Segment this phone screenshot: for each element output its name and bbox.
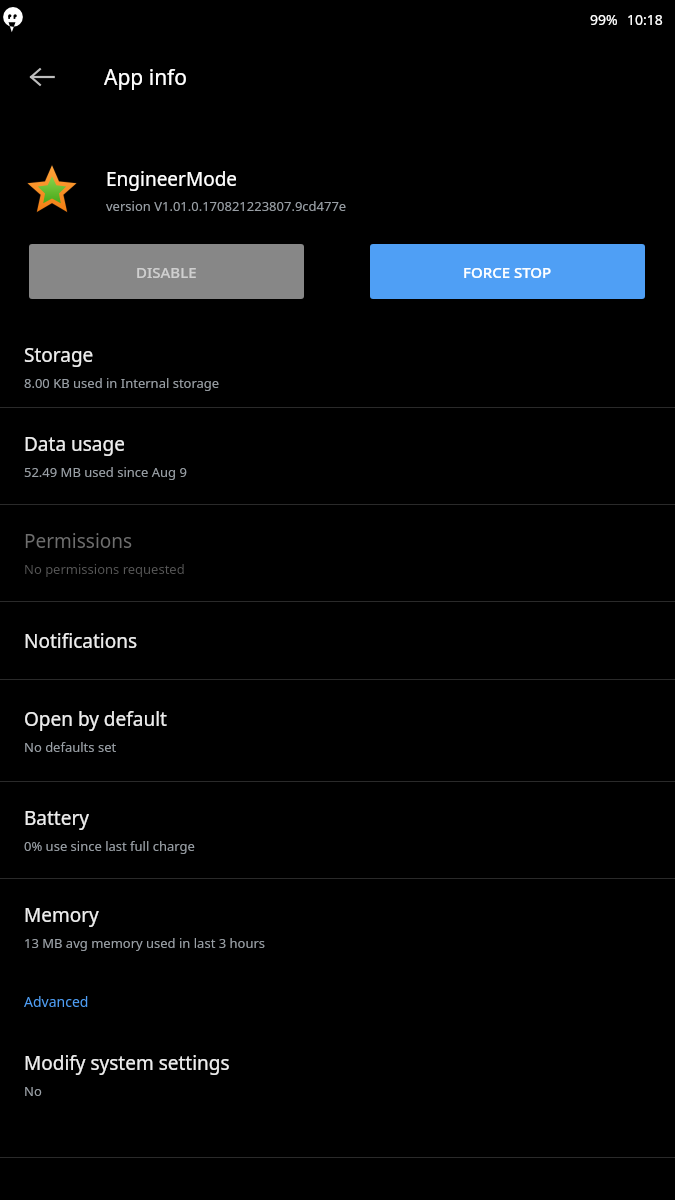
staticText: Advanced	[24, 992, 89, 1011]
button[interactable]: DISABLE	[29, 244, 304, 299]
button[interactable]: Permissions	[0, 505, 675, 601]
staticText: FORCE STOP	[463, 262, 552, 282]
staticText: Memory	[24, 902, 99, 928]
button[interactable]: FORCE STOP	[370, 244, 645, 299]
staticText: Open by default	[24, 706, 167, 732]
button[interactable]: Back	[14, 49, 70, 105]
staticText: App info	[104, 63, 188, 92]
staticText: Battery	[24, 805, 89, 831]
staticText: 99%	[590, 10, 618, 29]
staticText: Notifications	[24, 628, 138, 654]
staticText: EngineerMode	[106, 166, 238, 192]
staticText: Data usage	[24, 431, 125, 457]
staticText: Storage	[24, 342, 94, 368]
button[interactable]: Data usage	[0, 408, 675, 504]
button[interactable]: Battery	[0, 782, 675, 878]
staticText: Permissions	[24, 528, 133, 554]
staticText: 52.49 MB used since Aug 9	[24, 463, 187, 481]
button[interactable]: Modify system settings	[0, 1027, 675, 1123]
staticText: No	[24, 1082, 42, 1100]
staticText: 13 MB avg memory used in last 3 hours	[24, 934, 266, 952]
button[interactable]: Storage	[0, 327, 675, 407]
button[interactable]: Memory	[0, 879, 675, 975]
button[interactable]: Open by default	[0, 680, 675, 781]
button[interactable]: Notifications	[0, 602, 675, 679]
staticText: 8.00 KB used in Internal storage	[24, 374, 220, 392]
staticText: Modify system settings	[24, 1050, 230, 1076]
button[interactable]: Advanced	[0, 975, 675, 1027]
staticText: DISABLE	[136, 262, 197, 282]
staticText: No defaults set	[24, 738, 117, 756]
staticText: No permissions requested	[24, 560, 185, 578]
staticText: 10:18	[627, 10, 663, 29]
staticText: 0% use since last full charge	[24, 837, 195, 855]
staticText: version V1.01.0.170821223807.9cd477e	[106, 197, 347, 215]
